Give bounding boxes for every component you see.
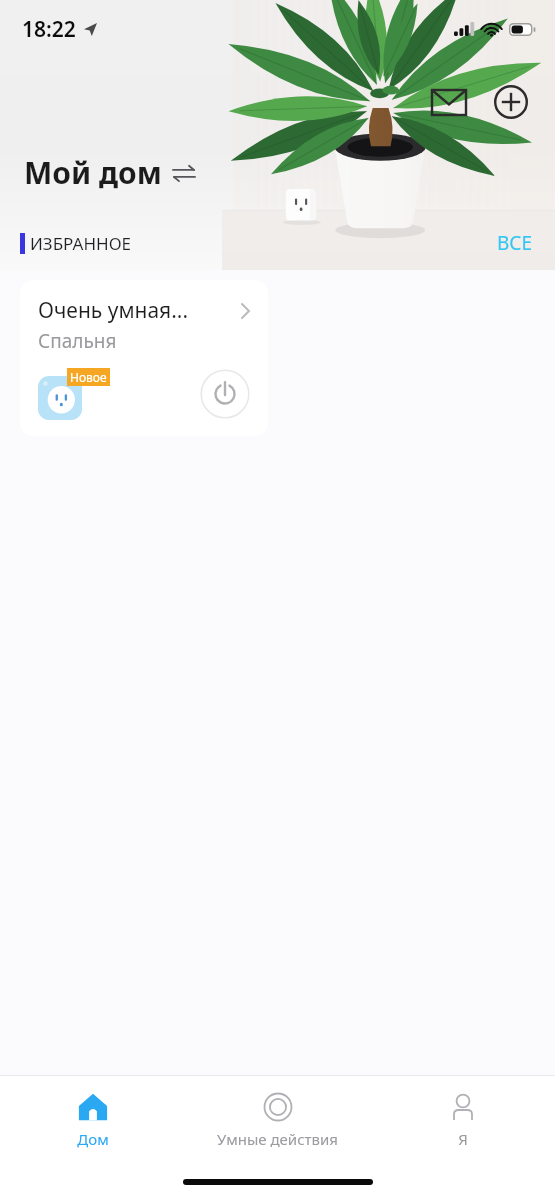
staticText: Дом <box>77 1129 109 1149</box>
button[interactable]: ИЗБРАННОЕ <box>20 232 132 255</box>
button[interactable]: ВСЕ <box>497 230 533 256</box>
button[interactable]: Мой дом <box>24 152 196 193</box>
staticText: Спальня <box>38 328 117 354</box>
button[interactable]: Очень умная... <box>20 280 268 436</box>
button[interactable]: Messages <box>425 78 473 126</box>
staticText: Новое <box>70 369 107 385</box>
button[interactable]: Я <box>370 1076 555 1164</box>
staticText: 18:22 <box>22 15 76 44</box>
button[interactable]: Умные действия <box>185 1076 370 1164</box>
button[interactable]: Power toggle <box>200 369 250 419</box>
staticText: Умные действия <box>217 1129 338 1149</box>
staticText: Мой дом <box>24 152 162 193</box>
staticText: ВСЕ <box>497 230 533 256</box>
staticText: ИЗБРАННОЕ <box>30 232 132 255</box>
staticText: Очень умная... <box>38 296 189 325</box>
button[interactable]: Дом <box>0 1076 185 1164</box>
staticText: Я <box>458 1129 468 1149</box>
button[interactable]: Add device <box>487 78 535 126</box>
